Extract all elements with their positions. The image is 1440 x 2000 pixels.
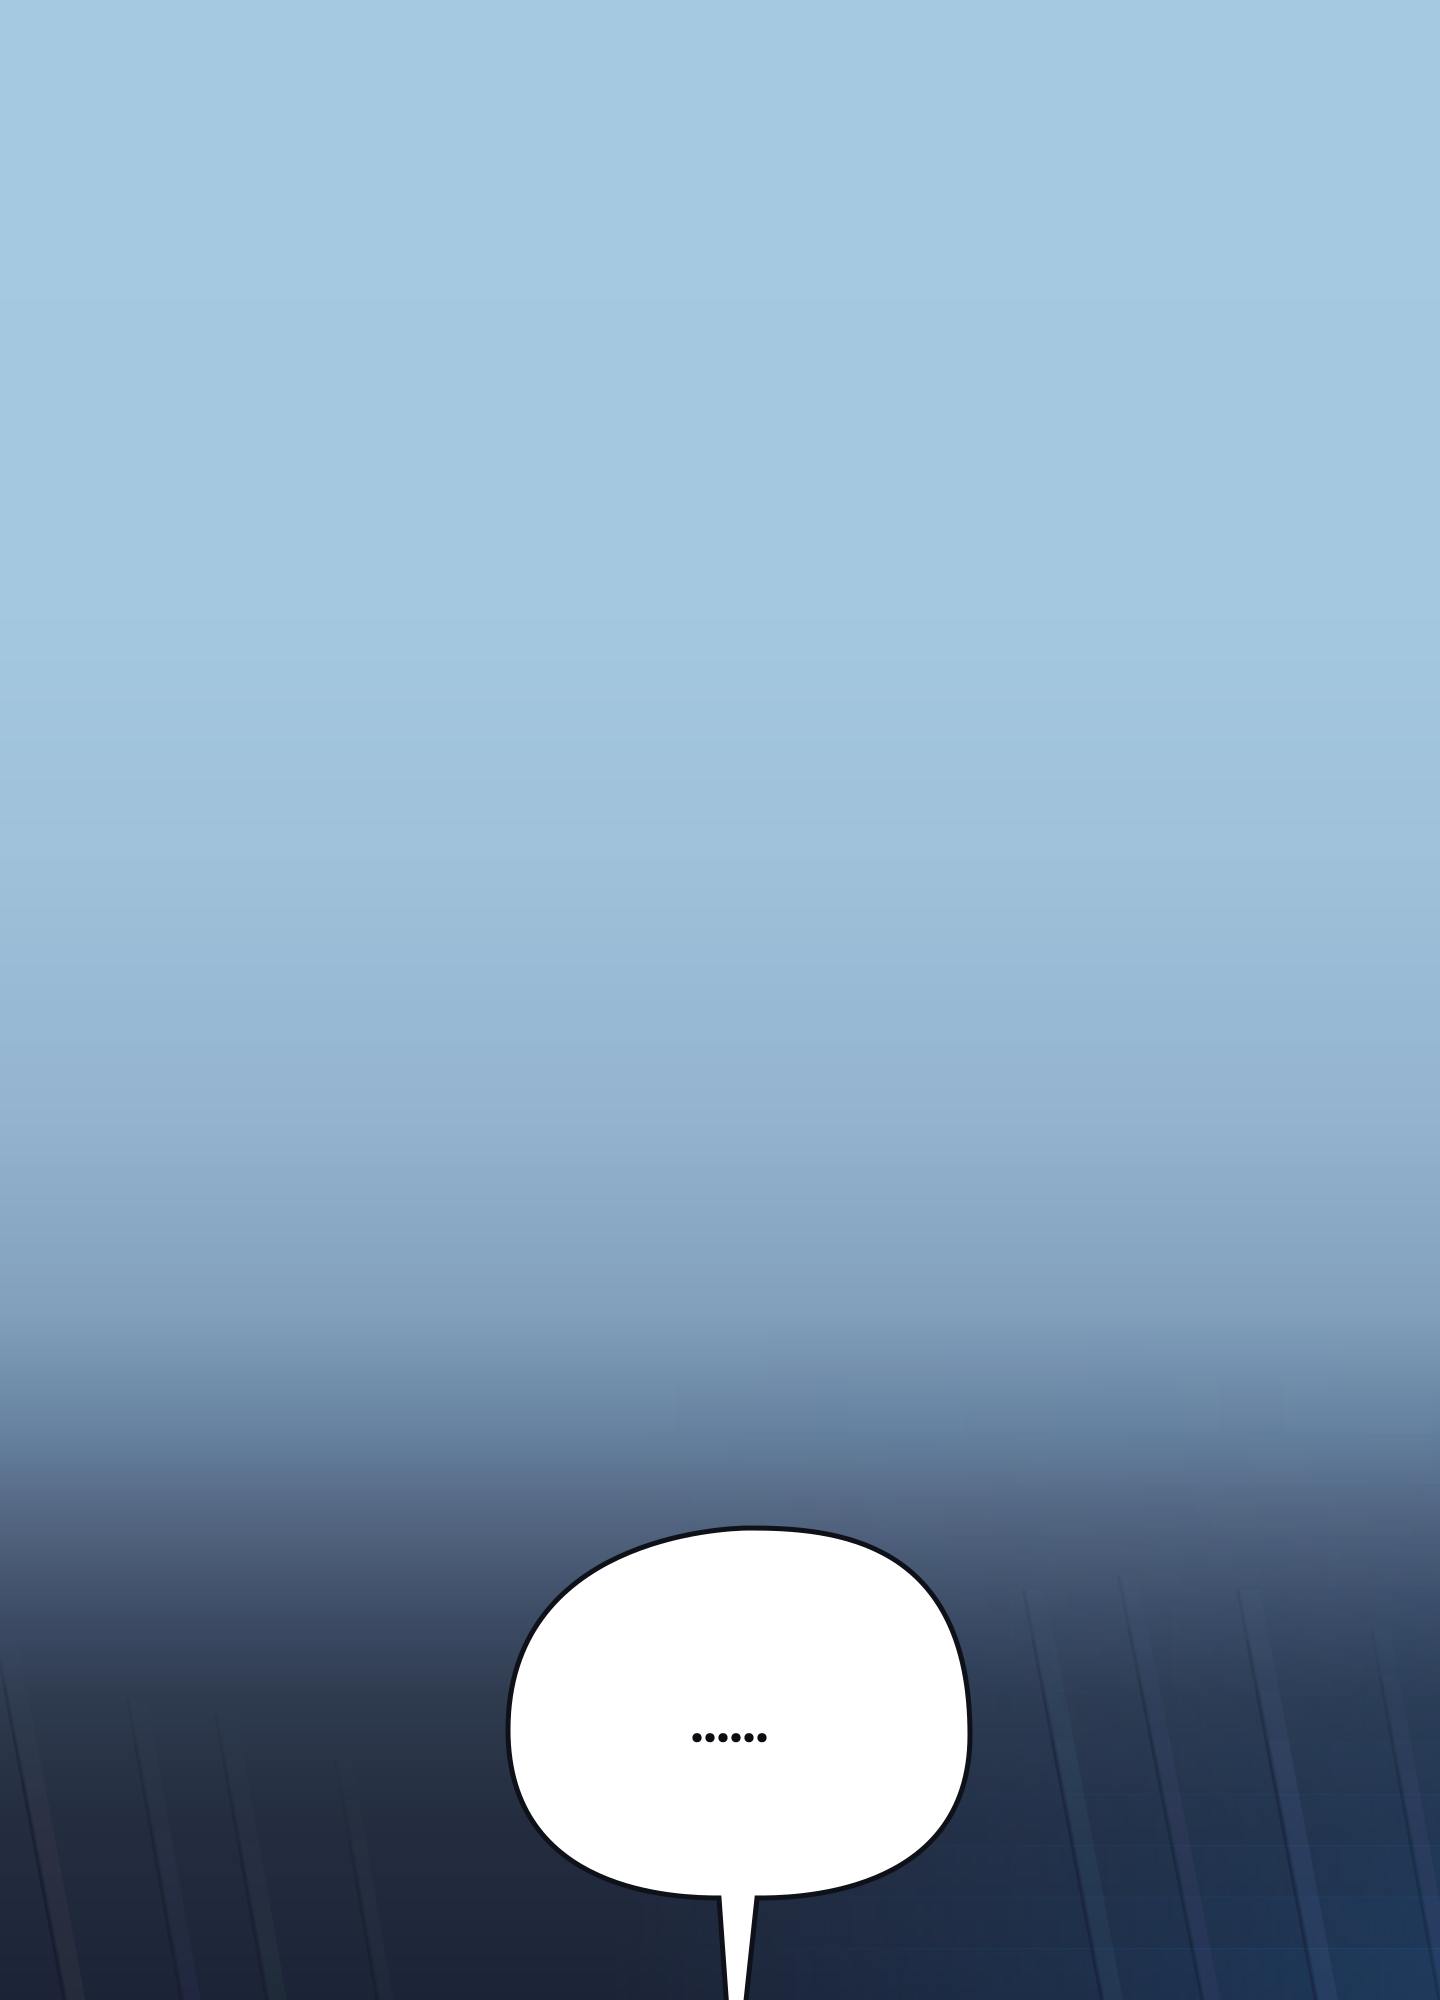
button[interactable]: Continue dialogue (0, 0, 1440, 2000)
